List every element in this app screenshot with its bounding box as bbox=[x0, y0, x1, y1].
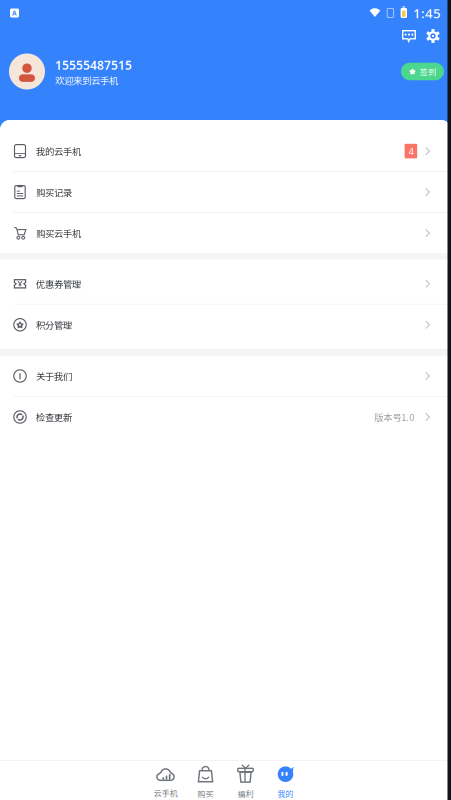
button[interactable]: 福利 bbox=[225, 761, 265, 800]
staticText: 15555487515 bbox=[55, 57, 132, 73]
staticText: 积分管理 bbox=[36, 318, 72, 331]
staticText: 签到 bbox=[420, 66, 436, 77]
button[interactable]: 购买记录 bbox=[0, 172, 451, 212]
button[interactable]: 购买云手机 bbox=[0, 213, 451, 253]
staticText: 版本号1.0 bbox=[374, 410, 414, 424]
staticText: 检查更新 bbox=[36, 410, 72, 424]
button[interactable]: 关于我们 bbox=[0, 356, 451, 396]
button[interactable]: 签到 bbox=[399, 63, 442, 80]
staticText: A bbox=[12, 9, 17, 17]
button[interactable]: 检查更新 bbox=[0, 397, 451, 437]
button[interactable]: 购买 bbox=[185, 761, 225, 800]
staticText: 优惠券管理 bbox=[36, 277, 81, 290]
button[interactable]: 设置 bbox=[421, 25, 445, 47]
staticText: 云手机 bbox=[153, 787, 177, 799]
button[interactable]: 云手机 bbox=[145, 761, 185, 800]
staticText: 购买记录 bbox=[36, 185, 72, 199]
button[interactable]: 优惠券管理 bbox=[0, 264, 451, 304]
button[interactable]: 积分管理 bbox=[0, 305, 451, 345]
staticText: 购买云手机 bbox=[36, 226, 81, 240]
staticText: 福利 bbox=[237, 788, 253, 799]
button[interactable]: 我的 bbox=[265, 761, 305, 800]
staticText: 我的 bbox=[277, 788, 293, 799]
staticText: 1:45 bbox=[413, 4, 441, 22]
staticText: 购买 bbox=[197, 788, 213, 799]
staticText: 欢迎来到云手机 bbox=[55, 73, 118, 87]
staticText: 我的云手机 bbox=[36, 144, 81, 158]
staticText: 关于我们 bbox=[36, 369, 72, 383]
button[interactable]: 消息 bbox=[397, 25, 421, 47]
button[interactable]: 我的云手机 bbox=[0, 131, 451, 171]
staticText: 4 bbox=[408, 145, 413, 157]
